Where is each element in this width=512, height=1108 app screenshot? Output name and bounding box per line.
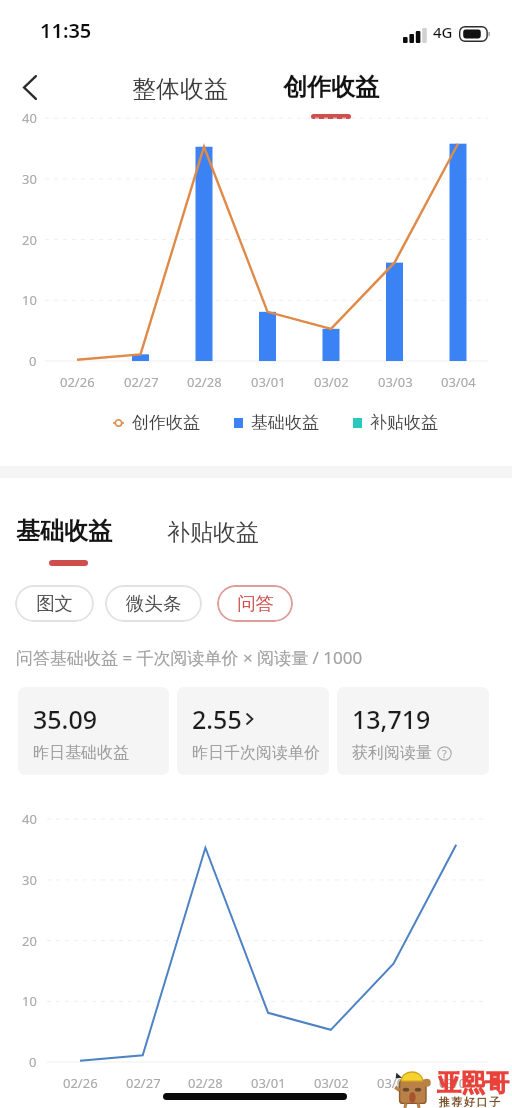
staticText: 02/26 [63, 1074, 98, 1092]
button[interactable]: 35.09 [18, 687, 169, 775]
button[interactable]: 创作收益 [113, 412, 200, 433]
staticText: 13,719 [352, 702, 431, 736]
staticText: 创作收益 [132, 412, 200, 433]
staticText: 03/02 [314, 373, 349, 391]
button[interactable]: 2.55 [177, 687, 329, 775]
button[interactable]: 问答 [217, 585, 293, 622]
staticText: 昨日千次阅读单价 [192, 743, 320, 763]
button[interactable]: 补贴收益 [353, 412, 438, 433]
staticText: 基础收益 [251, 412, 319, 433]
staticText: 02/28 [187, 373, 222, 391]
staticText: 20 [22, 231, 37, 249]
staticText: 02/27 [126, 1074, 161, 1092]
staticText: 03/02 [314, 1074, 349, 1092]
staticText: 获利阅读量 [352, 743, 432, 763]
staticText: 30 [22, 871, 37, 889]
staticText: 创作收益 [283, 72, 379, 102]
button[interactable]: 13,719 [337, 687, 489, 775]
staticText: 整体收益 [132, 74, 228, 104]
button[interactable]: 基础收益 [12, 512, 116, 570]
staticText: 03/03 [378, 373, 413, 391]
staticText: 10 [22, 291, 37, 309]
staticText: 2.55 [192, 702, 242, 736]
staticText: 03/01 [251, 1074, 286, 1092]
button[interactable]: Back [6, 63, 54, 111]
staticText: 4G [433, 22, 453, 42]
staticText: 11:35 [40, 17, 92, 44]
staticText: 补贴收益 [370, 412, 438, 433]
staticText: 微头条 [126, 592, 182, 615]
staticText: 02/28 [188, 1074, 223, 1092]
staticText: 40 [22, 810, 37, 828]
button[interactable]: 图文 [15, 585, 94, 622]
staticText: 亚熙哥 [437, 1068, 509, 1098]
staticText: 30 [22, 170, 37, 188]
staticText: ? [442, 746, 447, 761]
staticText: 0 [29, 1053, 37, 1071]
staticText: 02/27 [124, 373, 159, 391]
staticText: 补贴收益 [167, 518, 259, 547]
button[interactable]: 微头条 [105, 585, 202, 622]
button[interactable]: 基础收益 [234, 412, 319, 433]
staticText: 0 [29, 352, 37, 370]
staticText: 20 [22, 932, 37, 950]
staticText: 10 [22, 992, 37, 1010]
staticText: 03/04 [441, 373, 476, 391]
staticText: 40 [22, 109, 37, 127]
staticText: 问答基础收益 = 千次阅读单价 × 阅读量 / 1000 [16, 646, 363, 669]
staticText: 昨日基础收益 [33, 743, 129, 763]
staticText: 图文 [36, 592, 73, 615]
button[interactable]: 补贴收益 [163, 514, 263, 551]
button[interactable]: 整体收益 [120, 66, 240, 112]
staticText: 03/04 [439, 1074, 474, 1092]
staticText: 03/01 [251, 373, 286, 391]
staticText: 02/26 [60, 373, 95, 391]
staticText: 35.09 [33, 702, 98, 736]
button[interactable]: 创作收益 [271, 64, 391, 127]
staticText: 03/03 [377, 1074, 412, 1092]
staticText: 推荐好口子 [438, 1095, 501, 1108]
staticText: 问答 [237, 592, 274, 615]
staticText: 基础收益 [16, 516, 112, 546]
